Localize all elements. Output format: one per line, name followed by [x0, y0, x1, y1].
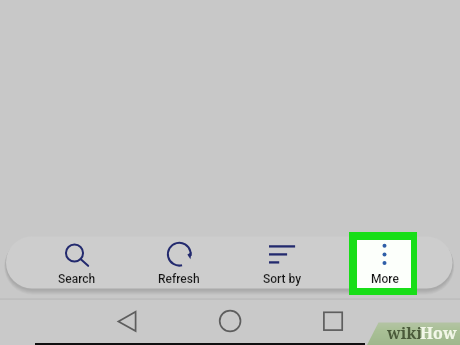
button[interactable]: [237, 236, 327, 288]
button[interactable]: [134, 236, 224, 288]
staticText: Search: [58, 272, 96, 286]
button[interactable]: [32, 236, 122, 288]
button[interactable]: Home: [213, 305, 247, 339]
button[interactable]: [340, 236, 430, 288]
button[interactable]: Recents: [316, 305, 350, 339]
staticText: wiki: [387, 322, 423, 344]
button[interactable]: Back: [111, 305, 145, 339]
staticText: Refresh: [158, 272, 200, 286]
staticText: How: [420, 322, 457, 344]
staticText: Sort by: [263, 272, 302, 286]
staticText: More: [371, 272, 399, 286]
